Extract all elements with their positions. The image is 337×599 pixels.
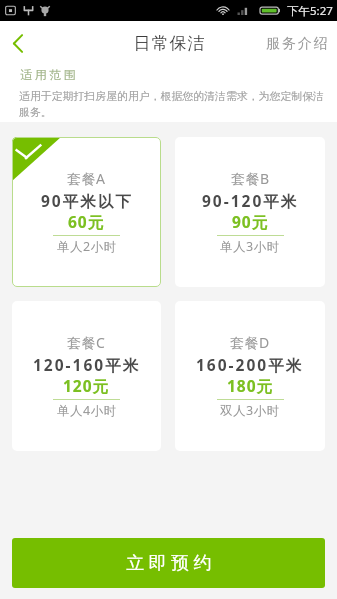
staticText: 180元 xyxy=(227,375,274,396)
staticText: 适用范围 xyxy=(19,67,77,82)
button[interactable]: 服务介绍 xyxy=(255,21,337,66)
staticText: 套餐B xyxy=(231,169,270,188)
staticText: 套餐A xyxy=(67,169,106,188)
staticText: 双人3小时 xyxy=(220,402,280,419)
button[interactable]: Back xyxy=(0,21,36,66)
staticText: 套餐C xyxy=(67,333,106,352)
button[interactable]: 套餐A xyxy=(12,137,161,287)
staticText: 单人4小时 xyxy=(57,402,117,419)
button[interactable]: 套餐D xyxy=(175,301,325,451)
staticText: 90平米以下 xyxy=(41,190,133,211)
button[interactable]: 套餐B xyxy=(175,137,325,287)
staticText: 服务介绍 xyxy=(265,35,329,53)
staticText: 120元 xyxy=(63,375,110,396)
staticText: 单人2小时 xyxy=(57,238,117,255)
staticText: 90-120平米 xyxy=(202,190,299,211)
staticText: 160-200平米 xyxy=(196,354,304,375)
staticText: 日常保洁 xyxy=(133,33,205,54)
staticText: 单人3小时 xyxy=(220,238,280,255)
staticText: 下午5:27 xyxy=(287,3,333,19)
staticText: 60元 xyxy=(68,211,105,232)
staticText: 120-160平米 xyxy=(33,354,141,375)
staticText: 适用于定期打扫房屋的用户，根据您的清洁需求，为您定制保洁服务。 xyxy=(19,90,333,119)
staticText: 套餐D xyxy=(230,333,270,352)
staticText: 90元 xyxy=(232,211,269,232)
button[interactable]: 立即预约 xyxy=(12,538,325,588)
staticText: 立即预约 xyxy=(124,552,214,575)
button[interactable]: 套餐C xyxy=(12,301,161,451)
